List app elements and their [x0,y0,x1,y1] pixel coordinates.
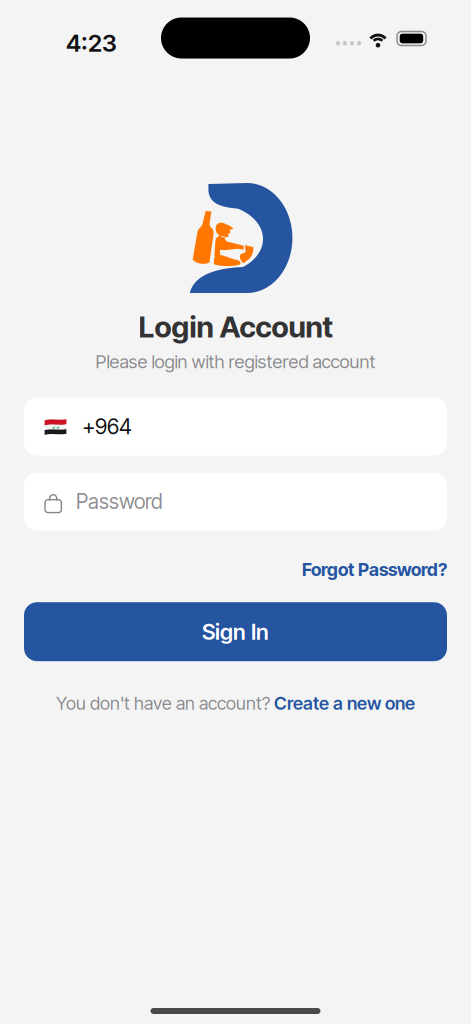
staticText: Sign In [202,618,269,645]
staticText: Create a new one [274,692,415,714]
staticText: +964 [82,414,132,439]
staticText: Login Account [138,309,332,344]
staticText: You don't have an account? [56,692,270,714]
button[interactable]: Sign In [0,602,471,661]
button[interactable]: Password [0,473,471,531]
staticText: 4:23 [66,28,117,57]
staticText: Please login with registered account [95,350,375,373]
staticText: Password [76,489,163,514]
staticText: Forgot Password? [302,559,447,580]
button[interactable]: Forgot Password? [302,559,447,580]
button[interactable]: Create a new one [274,692,415,714]
